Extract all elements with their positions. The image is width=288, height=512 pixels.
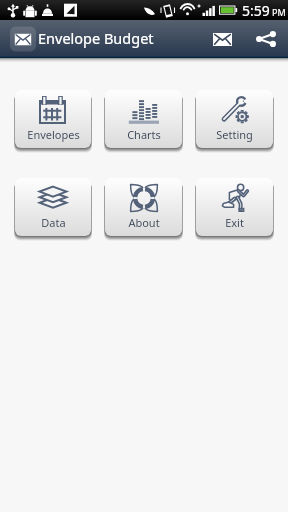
staticText: 5:59 — [242, 1, 270, 20]
staticText: Charts — [127, 127, 161, 142]
button[interactable]: About — [105, 178, 182, 236]
button[interactable]: Share — [245, 20, 286, 58]
staticText: About — [128, 215, 160, 230]
staticText: Setting — [216, 127, 253, 142]
staticText: Envelopes — [27, 127, 80, 142]
staticText: Envelope Budget — [38, 28, 154, 48]
staticText: PM — [272, 6, 286, 18]
button[interactable]: Exit — [196, 178, 273, 236]
staticText: Exit — [225, 215, 244, 230]
button[interactable]: Setting — [196, 90, 273, 148]
button[interactable]: Email — [200, 20, 245, 58]
button[interactable]: Data — [15, 178, 91, 236]
staticText: Data — [41, 215, 66, 230]
button[interactable]: Charts — [105, 90, 182, 148]
button[interactable]: Envelopes — [15, 90, 91, 148]
